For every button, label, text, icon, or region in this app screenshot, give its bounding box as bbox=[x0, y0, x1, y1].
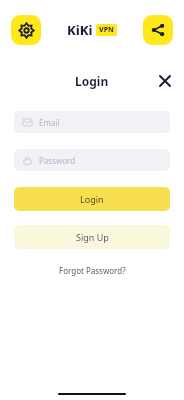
button[interactable]: Email bbox=[14, 111, 170, 133]
staticText: Login bbox=[75, 73, 109, 89]
staticText: KiKi bbox=[67, 21, 93, 39]
button[interactable]: Close bbox=[155, 71, 175, 91]
staticText: VPN bbox=[99, 25, 114, 35]
button[interactable]: Password bbox=[14, 149, 170, 171]
button[interactable]: Login bbox=[14, 187, 170, 211]
button[interactable]: Forgot Password? bbox=[55, 261, 130, 280]
button[interactable]: Sign Up bbox=[14, 225, 170, 249]
staticText: Email bbox=[39, 117, 60, 128]
staticText: Forgot Password? bbox=[59, 265, 126, 276]
staticText: Login bbox=[80, 193, 104, 205]
staticText: Password bbox=[39, 155, 76, 166]
button[interactable]: Share bbox=[143, 15, 173, 45]
staticText: Sign Up bbox=[76, 231, 109, 243]
button[interactable]: Settings bbox=[11, 15, 41, 45]
